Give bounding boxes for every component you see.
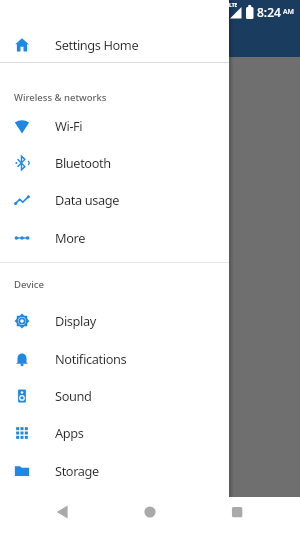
button[interactable]: Wi-Fi — [0, 107, 230, 144]
button[interactable]: Apps — [0, 414, 230, 451]
button[interactable]: Storage — [0, 452, 230, 489]
button[interactable]: Display — [0, 302, 230, 339]
button[interactable]: Sound — [0, 377, 230, 414]
staticText: Display — [55, 312, 96, 329]
staticText: Wireless & networks — [14, 91, 107, 104]
staticText: 8:24 — [257, 4, 281, 20]
button[interactable] — [48, 498, 76, 526]
staticText: More — [55, 229, 85, 246]
button[interactable]: Bluetooth — [0, 144, 230, 181]
button[interactable]: Notifications — [0, 340, 230, 377]
button[interactable] — [223, 498, 251, 526]
button[interactable]: Data usage — [0, 181, 230, 218]
staticText: Wi-Fi — [55, 117, 83, 134]
staticText: Settings Home — [55, 36, 139, 53]
button[interactable] — [136, 498, 164, 526]
staticText: AM — [283, 7, 295, 17]
button[interactable]: More — [0, 219, 230, 256]
staticText: Notifications — [55, 350, 127, 367]
staticText: Bluetooth — [55, 154, 111, 171]
staticText: Apps — [55, 424, 84, 441]
staticText: Device — [14, 278, 44, 291]
staticText: Sound — [55, 387, 92, 404]
button[interactable]: Settings Home — [0, 26, 230, 63]
staticText: Storage — [55, 462, 99, 479]
staticText: LTE — [229, 2, 238, 9]
staticText: Data usage — [55, 191, 119, 208]
